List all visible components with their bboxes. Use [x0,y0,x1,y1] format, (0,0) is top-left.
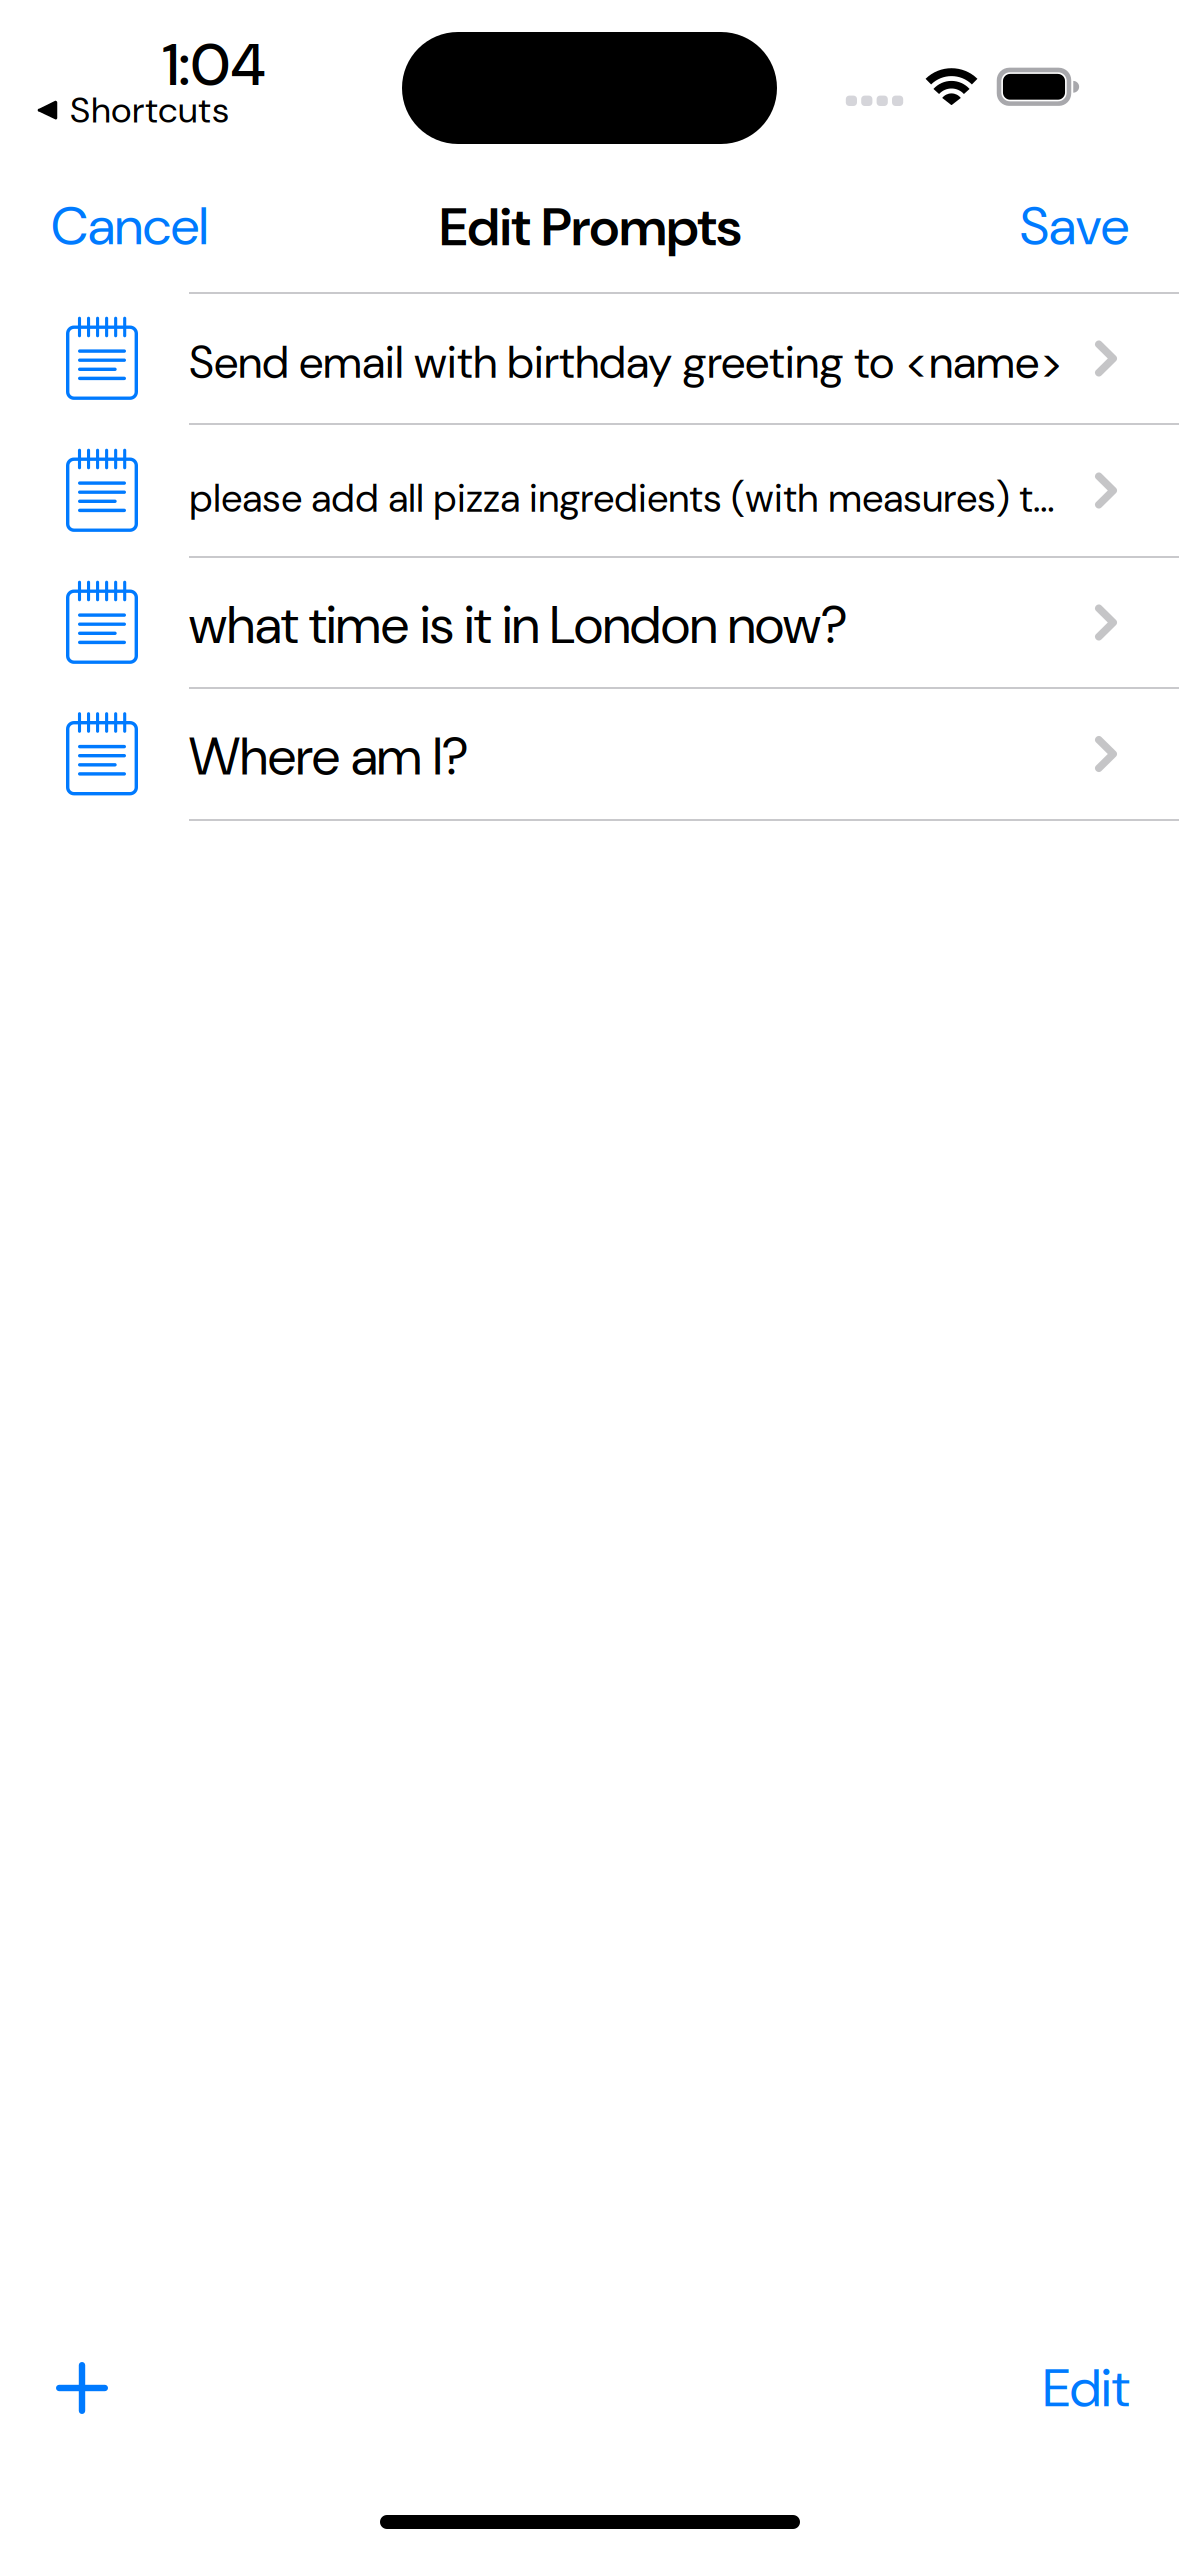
staticText: Send email with birthday greeting to <na… [189,333,1064,392]
button[interactable]: Add prompt [24,2330,140,2446]
button[interactable]: Where am I? [0,689,1179,821]
staticText: Edit [1043,2353,1129,2423]
staticText: 1:04 [162,27,265,103]
staticText: what time is it in London now? [189,591,848,659]
button[interactable]: Cancel [0,171,261,281]
button[interactable]: please add all pizza ingredients (with m… [0,425,1179,558]
staticText: please add all pizza ingredients (with m… [189,473,1055,524]
button[interactable]: Shortcuts [22,77,244,144]
button[interactable]: what time is it in London now? [0,558,1179,689]
staticText: Edit Prompts [439,192,741,262]
staticText: Shortcuts [70,87,230,134]
button[interactable]: Send email with birthday greeting to <na… [0,294,1179,425]
button[interactable]: Edit [989,2338,1179,2438]
button[interactable]: Save [969,171,1179,281]
staticText: Save [1020,191,1129,261]
staticText: Where am I? [189,722,469,791]
staticText: Cancel [51,191,208,261]
